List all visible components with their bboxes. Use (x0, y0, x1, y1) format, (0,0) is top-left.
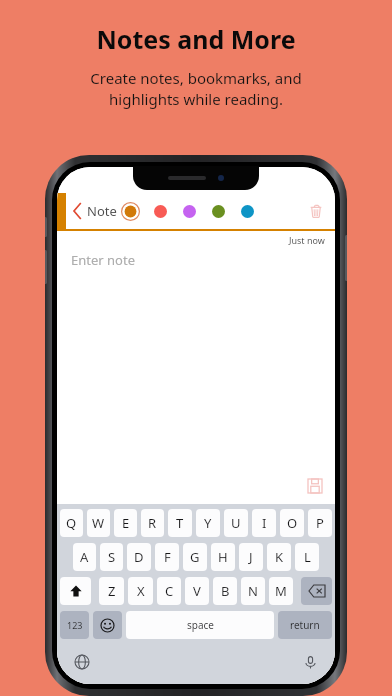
button[interactable]: O (280, 509, 304, 537)
staticText: F (164, 548, 171, 566)
button[interactable]: C (157, 577, 181, 605)
button[interactable]: R (141, 509, 164, 537)
button[interactable]: X (128, 577, 153, 605)
staticText: O (287, 514, 298, 532)
staticText: N (248, 582, 258, 600)
staticText: Enter note (71, 251, 135, 269)
staticText: 123 (67, 619, 83, 631)
staticText: G (190, 548, 200, 566)
staticText: W (92, 514, 105, 532)
button[interactable]: Red highlight (151, 202, 169, 220)
staticText: M (275, 582, 287, 600)
staticText: Just now (289, 234, 325, 246)
button[interactable]: B (213, 577, 237, 605)
button[interactable]: K (267, 543, 291, 571)
button[interactable]: space (126, 611, 274, 639)
button[interactable]: W (87, 509, 110, 537)
staticText: X (137, 582, 145, 600)
button[interactable]: Voice input (299, 651, 321, 673)
staticText: I (262, 514, 267, 532)
button[interactable]: Orange highlight (121, 202, 140, 221)
staticText: H (218, 548, 228, 566)
button[interactable]: Y (196, 509, 220, 537)
staticText: V (193, 582, 201, 600)
button[interactable]: Backspace (301, 577, 332, 605)
button[interactable]: N (241, 577, 265, 605)
button[interactable]: A (73, 543, 96, 571)
button[interactable]: Delete note (305, 200, 327, 222)
button[interactable]: F (155, 543, 179, 571)
staticText: C (165, 582, 174, 600)
button[interactable]: Purple highlight (180, 202, 198, 220)
staticText: Create notes, bookmarks, and highlights … (90, 68, 302, 110)
button[interactable]: J (239, 543, 263, 571)
button[interactable]: L (295, 543, 319, 571)
staticText: Note (87, 202, 117, 220)
button[interactable]: Q (60, 509, 83, 537)
staticText: R (148, 514, 157, 532)
button[interactable]: D (127, 543, 151, 571)
button[interactable]: G (183, 543, 207, 571)
staticText: L (304, 548, 311, 566)
button[interactable]: Emoji (93, 611, 122, 639)
staticText: return (290, 618, 320, 632)
button[interactable]: S (100, 543, 123, 571)
button[interactable]: Blue highlight (238, 202, 256, 220)
staticText: B (221, 582, 230, 600)
staticText: space (187, 618, 214, 632)
staticText: Z (108, 582, 116, 600)
button[interactable]: return (278, 611, 332, 639)
button[interactable]: T (168, 509, 192, 537)
staticText: D (134, 548, 144, 566)
button[interactable]: I (252, 509, 276, 537)
staticText: Notes and More (96, 22, 296, 56)
button[interactable]: U (224, 509, 248, 537)
button[interactable]: 123 (60, 611, 89, 639)
staticText: E (122, 514, 130, 532)
staticText: T (176, 514, 184, 532)
button[interactable]: P (308, 509, 332, 537)
button[interactable]: Green highlight (209, 202, 227, 220)
button[interactable]: Shift (60, 577, 91, 605)
staticText: J (249, 548, 253, 566)
staticText: S (108, 548, 116, 566)
staticText: Y (204, 514, 212, 532)
button[interactable]: M (269, 577, 293, 605)
button[interactable]: Save note (305, 476, 325, 496)
staticText: Q (66, 514, 77, 532)
button[interactable]: Z (99, 577, 124, 605)
button[interactable]: H (211, 543, 235, 571)
staticText: U (231, 514, 241, 532)
button[interactable]: E (114, 509, 137, 537)
button[interactable]: Note (70, 202, 119, 220)
button[interactable]: V (185, 577, 209, 605)
button[interactable]: Just now (57, 231, 335, 504)
staticText: P (316, 514, 324, 532)
staticText: A (80, 548, 89, 566)
button[interactable]: Change keyboard language (71, 651, 93, 673)
staticText: K (275, 548, 284, 566)
